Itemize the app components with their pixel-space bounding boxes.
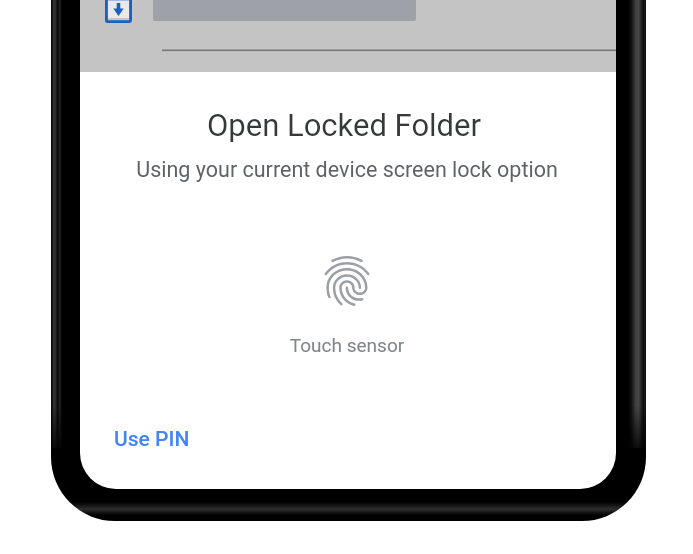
staticText: Using your current device screen lock op… (79, 157, 615, 182)
staticText: Touch sensor (79, 334, 615, 356)
staticText: Open Locked Folder (76, 107, 612, 143)
button[interactable]: Fingerprint sensor (317, 251, 377, 311)
button[interactable]: Use PIN (106, 420, 198, 459)
staticText: Use PIN (114, 427, 190, 452)
button[interactable]: Download (105, 0, 132, 23)
